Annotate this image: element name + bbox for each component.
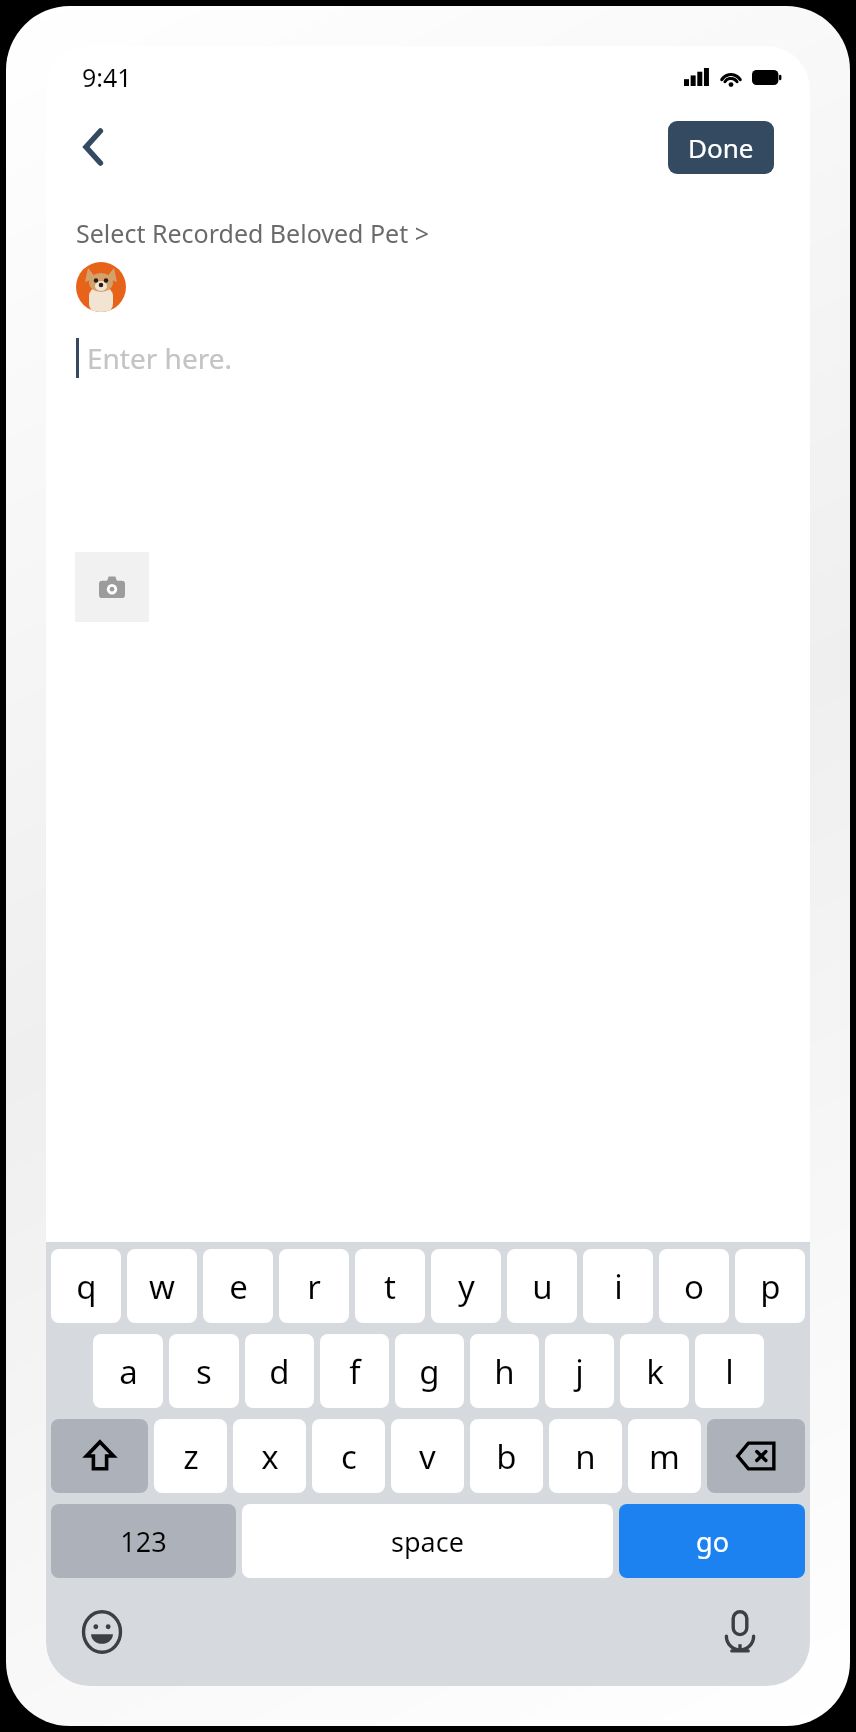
button[interactable]: m	[628, 1419, 701, 1493]
button[interactable]: Add photo	[75, 552, 149, 622]
staticText: Done	[688, 130, 754, 165]
button[interactable]: f	[320, 1334, 389, 1408]
staticText: Enter here.	[87, 339, 233, 377]
button[interactable]: Select Recorded Beloved Pet >	[76, 214, 430, 252]
staticText: z	[183, 1434, 199, 1479]
button[interactable]: v	[391, 1419, 464, 1493]
staticText: q	[76, 1264, 97, 1309]
button[interactable]: Done	[668, 121, 774, 174]
staticText: o	[684, 1264, 704, 1309]
button[interactable]: 123	[51, 1504, 236, 1578]
staticText: b	[496, 1434, 517, 1479]
button[interactable]: p	[735, 1249, 805, 1323]
staticText: n	[575, 1434, 596, 1479]
button[interactable]: h	[470, 1334, 539, 1408]
staticText: r	[307, 1264, 321, 1309]
staticText: t	[384, 1264, 396, 1309]
staticText: l	[725, 1349, 734, 1394]
staticText: p	[760, 1264, 781, 1309]
button[interactable]: b	[470, 1419, 543, 1493]
staticText: v	[419, 1434, 436, 1479]
staticText: 123	[120, 1523, 167, 1560]
staticText: j	[575, 1349, 584, 1394]
button[interactable]: e	[203, 1249, 273, 1323]
button[interactable]: j	[545, 1334, 614, 1408]
button[interactable]: k	[620, 1334, 689, 1408]
button[interactable]: a	[93, 1334, 163, 1408]
staticText: h	[494, 1349, 515, 1394]
staticText: g	[419, 1349, 440, 1394]
button[interactable]: c	[312, 1419, 385, 1493]
button[interactable]: Back	[66, 119, 122, 175]
button[interactable]: o	[659, 1249, 729, 1323]
button[interactable]: d	[245, 1334, 314, 1408]
button[interactable]: z	[154, 1419, 227, 1493]
staticText: a	[119, 1349, 138, 1394]
staticText: k	[646, 1349, 664, 1394]
staticText: i	[614, 1264, 623, 1309]
button[interactable]: s	[169, 1334, 239, 1408]
staticText: f	[349, 1349, 361, 1394]
button[interactable]: Dictation	[712, 1604, 768, 1660]
staticText: y	[458, 1264, 475, 1309]
button[interactable]: Shift	[51, 1419, 148, 1493]
staticText: space	[391, 1523, 464, 1560]
staticText: e	[229, 1264, 248, 1309]
staticText: c	[341, 1434, 357, 1479]
button[interactable]: go	[619, 1504, 805, 1578]
button[interactable]: u	[507, 1249, 577, 1323]
button[interactable]: Enter here.	[76, 338, 780, 378]
button[interactable]: n	[549, 1419, 622, 1493]
button[interactable]: i	[583, 1249, 653, 1323]
staticText: m	[649, 1434, 680, 1479]
button[interactable]: Delete	[707, 1419, 805, 1493]
staticText: x	[261, 1434, 279, 1479]
button[interactable]: w	[127, 1249, 197, 1323]
button[interactable]: Emoji	[74, 1604, 130, 1660]
staticText: w	[149, 1264, 175, 1309]
staticText: d	[269, 1349, 290, 1394]
staticText: s	[196, 1349, 212, 1394]
button[interactable]: g	[395, 1334, 464, 1408]
staticText: u	[532, 1264, 553, 1309]
button[interactable]: Pet avatar	[76, 262, 126, 312]
staticText: Select Recorded Beloved Pet >	[76, 216, 430, 250]
button[interactable]: r	[279, 1249, 349, 1323]
button[interactable]: t	[355, 1249, 425, 1323]
button[interactable]: y	[431, 1249, 501, 1323]
staticText: 9:41	[82, 60, 132, 94]
staticText: go	[696, 1523, 729, 1560]
button[interactable]: q	[51, 1249, 121, 1323]
button[interactable]: x	[233, 1419, 306, 1493]
button[interactable]: space	[242, 1504, 613, 1578]
button[interactable]: l	[695, 1334, 764, 1408]
